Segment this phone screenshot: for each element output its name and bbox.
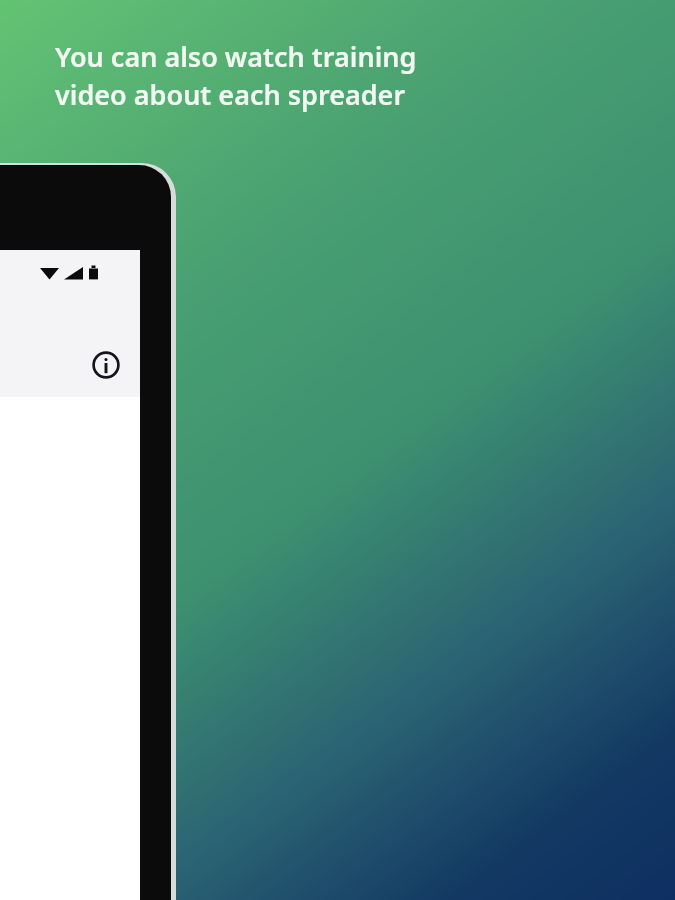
staticText: You can also watch training video about … (55, 38, 417, 113)
button[interactable]: Information (83, 342, 129, 388)
